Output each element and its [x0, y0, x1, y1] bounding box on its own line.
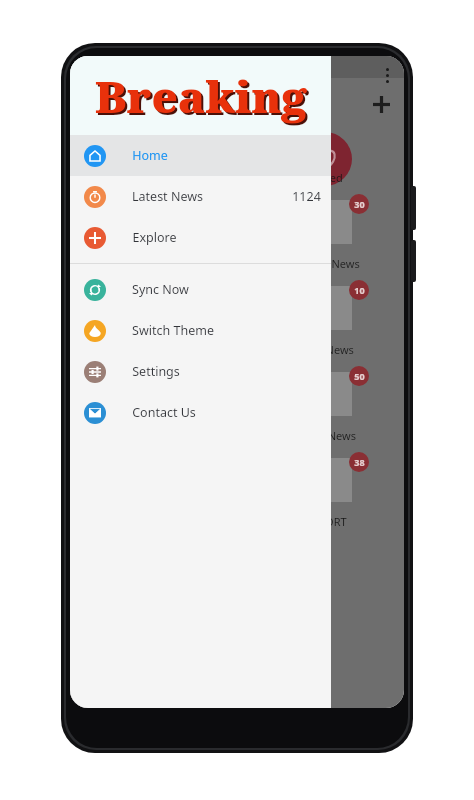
button[interactable]: Liked — [70, 130, 404, 192]
button[interactable]: Contact Us — [70, 392, 331, 433]
button[interactable]: Settings — [70, 351, 331, 392]
staticText: Breaking — [95, 66, 307, 126]
staticText: 30 — [354, 198, 365, 210]
button[interactable]: Add — [364, 87, 398, 121]
staticText: Contact Us — [132, 404, 196, 421]
staticText: 1124 — [292, 188, 321, 205]
button[interactable]: Home — [70, 135, 331, 176]
staticText: 10 — [354, 284, 365, 296]
staticText: Sync Now — [132, 281, 189, 298]
staticText: 38 — [354, 456, 365, 468]
staticText: Liked — [315, 170, 343, 185]
staticText: CNBC News — [299, 256, 360, 271]
staticText: Latest News — [132, 188, 203, 205]
staticText: 50 — [354, 370, 365, 382]
staticText: Breaking — [97, 68, 309, 128]
button[interactable]: More options — [377, 68, 397, 94]
button[interactable]: Latest News — [70, 176, 331, 217]
staticText: Settings — [132, 363, 180, 380]
button[interactable]: 38 — [70, 450, 404, 536]
button[interactable]: Sync Now — [70, 269, 331, 310]
staticText: Switch Theme — [132, 322, 214, 339]
button[interactable]: 30 — [70, 192, 404, 278]
button[interactable]: 50 — [70, 364, 404, 450]
button[interactable]: 10 — [70, 278, 404, 364]
staticText: Explore — [132, 229, 177, 246]
button[interactable]: Switch Theme — [70, 310, 331, 351]
staticText: Sky News — [305, 342, 354, 357]
staticText: SPORT — [312, 514, 347, 529]
button[interactable]: Explore — [70, 217, 331, 258]
staticText: Home — [132, 147, 168, 164]
staticText: GEO News — [302, 428, 356, 443]
